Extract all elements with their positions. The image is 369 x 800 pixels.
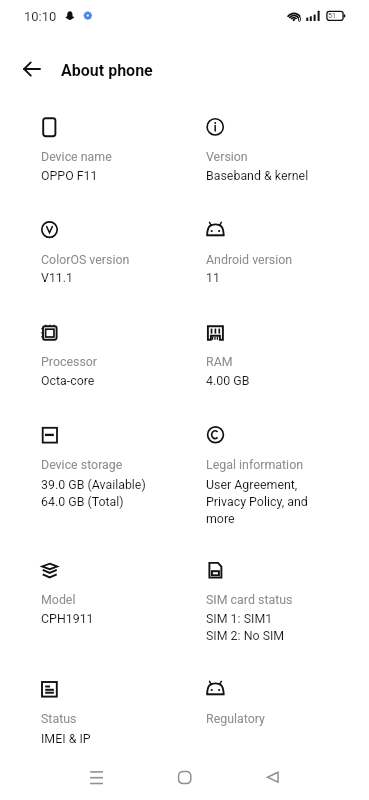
button[interactable]: Navigate up xyxy=(9,49,49,89)
staticText: Android version xyxy=(206,252,293,267)
staticText: SIM 1: SIM1 SIM 2: No SIM xyxy=(206,611,285,643)
staticText: Octa-core xyxy=(41,373,95,388)
staticText: IMEI & IP xyxy=(41,731,91,746)
staticText: Baseband & kernel xyxy=(206,168,309,183)
staticText: User Agreement, Privacy Policy, and more xyxy=(206,477,308,526)
button[interactable]: Recent apps xyxy=(74,755,119,800)
staticText: Model xyxy=(41,592,76,607)
staticText: 4.00 GB xyxy=(206,373,250,388)
staticText: CPH1911 xyxy=(41,611,94,626)
staticText: ColorOS version xyxy=(41,252,130,267)
staticText: Legal information xyxy=(206,457,304,472)
staticText: Processor xyxy=(41,354,98,369)
staticText: OPPO F11 xyxy=(41,168,98,183)
staticText: 39.0 GB (Available) 64.0 GB (Total) xyxy=(41,477,146,509)
staticText: 11 xyxy=(206,270,220,285)
staticText: Version xyxy=(206,149,248,164)
staticText: Regulatory xyxy=(206,711,265,726)
staticText: Status xyxy=(41,711,77,726)
staticText: 10:10 xyxy=(24,9,57,24)
button[interactable]: Home xyxy=(162,755,207,800)
button[interactable]: Back xyxy=(250,755,295,800)
staticText: Device storage xyxy=(41,457,123,472)
staticText: V11.1 xyxy=(41,270,74,285)
staticText: About phone xyxy=(61,61,153,80)
staticText: 51 xyxy=(328,12,336,20)
staticText: Device name xyxy=(41,149,112,164)
staticText: RAM xyxy=(206,354,233,369)
staticText: SIM card status xyxy=(206,592,293,607)
